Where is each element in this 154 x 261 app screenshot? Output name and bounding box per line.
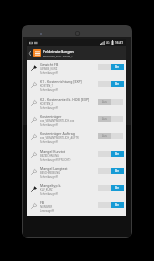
staticText: Feldeinstellungen (43, 49, 74, 54)
button[interactable]: Ein (98, 151, 123, 157)
button[interactable]: Aus (98, 99, 123, 105)
staticText: Mangel Kurztxt (40, 149, 66, 154)
staticText: BESCHREIBUNG (40, 171, 61, 175)
staticText: Ein (115, 65, 120, 69)
staticText: KLV_KURZ (40, 188, 53, 192)
staticText: Ein (115, 152, 120, 156)
staticText: Schreibzugriff (PFLICHT) (40, 158, 71, 162)
staticText: Schreibzugriff (40, 123, 58, 127)
staticText: BOZNAMR_PNG - POS30_1 (43, 54, 73, 57)
staticText: Aus (102, 134, 107, 138)
staticText: K1 - Kostenrichtung [EXP] (40, 79, 82, 84)
staticText: 16:31 (115, 41, 124, 45)
button[interactable]: Aus (98, 133, 123, 139)
staticText: KOSTEN_1 (40, 84, 53, 88)
staticText: Mangeltyp k. (40, 183, 62, 188)
button[interactable]: Gewicht FB (27, 60, 126, 77)
staticText: NUMMER (40, 205, 53, 209)
staticText: GEWEB_KURZ (40, 67, 58, 71)
staticText: Schreibzugriff (40, 106, 58, 110)
button[interactable]: K1 - Kostenrichtung [EXP] (27, 77, 126, 94)
staticText: Lesezugriff (40, 209, 54, 213)
button[interactable]: Ein (98, 64, 123, 70)
staticText: K2 - Kostenanteil k. HOB [EXP] (40, 97, 90, 102)
staticText: Kostenträger (40, 114, 62, 119)
button[interactable]: Ein (98, 168, 123, 174)
staticText: xxx_VERANTWORTLICH_AUFTR (40, 136, 79, 140)
button[interactable]: Mangeltyp k. (27, 181, 126, 198)
button[interactable]: Ein (98, 185, 123, 191)
button[interactable]: Ein (98, 81, 123, 87)
staticText: Schreibzugriff (40, 140, 58, 144)
button[interactable]: Aus (98, 116, 123, 122)
staticText: Schreibzugriff (40, 175, 58, 179)
staticText: xxx_VERANTWORTLICH.xxx (40, 119, 75, 123)
staticText: Ein (115, 186, 120, 190)
button[interactable]: K2 - Kostenanteil k. HOB [EXP] (27, 95, 126, 112)
staticText: Kostenträger Auftrag (40, 131, 75, 136)
staticText: Schreibzugriff (40, 192, 58, 196)
button[interactable]: Ein (98, 202, 123, 208)
button[interactable]: Kostenträger Auftrag (27, 129, 126, 146)
staticText: Aus (102, 100, 107, 104)
button[interactable]: Mangel Kurztxt (27, 147, 126, 164)
staticText: Mangel Langtext (40, 166, 68, 171)
staticText: Aus (102, 117, 107, 121)
staticText: Ein (115, 82, 120, 86)
staticText: 4G (106, 41, 110, 45)
staticText: FB (40, 200, 45, 205)
staticText: BEZEICHNUNG (40, 154, 59, 158)
button[interactable]: Mangel Langtext (27, 164, 126, 181)
staticText: Schreibzugriff (40, 88, 58, 92)
staticText: Gewicht FB (40, 62, 59, 67)
staticText: KOSTEN_2 (40, 102, 53, 106)
button[interactable]: Kostenträger (27, 112, 126, 129)
staticText: Ein (115, 169, 120, 173)
button[interactable]: Back (27, 47, 33, 59)
staticText: Ein (115, 203, 120, 207)
button[interactable]: FB (27, 198, 126, 215)
staticText: Schreibzugriff (40, 71, 58, 75)
